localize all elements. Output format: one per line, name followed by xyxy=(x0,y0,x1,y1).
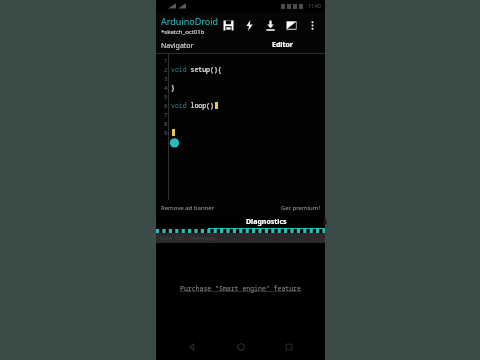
staticText: } xyxy=(171,83,175,92)
staticText: void setup(){ xyxy=(171,65,222,74)
staticText: 2 xyxy=(164,66,168,74)
button[interactable]: Purchase "Smart engine" feature xyxy=(176,280,305,297)
staticText: 6 xyxy=(164,102,168,110)
staticText: Message xyxy=(190,234,216,242)
button[interactable]: More options xyxy=(302,13,323,37)
staticText: 3 xyxy=(164,75,168,83)
staticText: 1 xyxy=(164,57,168,65)
staticText: 4 xyxy=(164,84,168,92)
button[interactable]: Get premium! xyxy=(281,204,321,212)
staticText: Col xyxy=(175,234,184,242)
staticText: 9 xyxy=(164,129,168,137)
button[interactable]: Recent apps xyxy=(276,334,302,360)
staticText: Diagnostics xyxy=(246,217,287,227)
staticText: Line xyxy=(160,234,172,242)
staticText: *sketch_oct01b xyxy=(161,28,205,36)
button[interactable]: Back xyxy=(179,334,205,360)
staticText: Get premium! xyxy=(281,204,321,212)
button[interactable]: Remove ad banner xyxy=(161,204,215,212)
button[interactable]: Navigator xyxy=(156,38,240,54)
staticText: 7 xyxy=(164,111,168,119)
staticText: 5 xyxy=(164,93,168,101)
staticText: 8 xyxy=(164,120,168,128)
button[interactable]: Verify xyxy=(239,13,260,37)
button[interactable]: Save xyxy=(218,13,239,37)
staticText: ArduinoDroid xyxy=(161,15,219,27)
button[interactable]: Upload xyxy=(260,13,281,37)
button[interactable]: Home xyxy=(228,334,254,360)
button[interactable]: Diagnostics xyxy=(208,215,325,229)
staticText: Navigator xyxy=(161,41,194,51)
button[interactable]: Run xyxy=(281,13,302,37)
staticText: Remove ad banner xyxy=(161,204,215,212)
staticText: Purchase "Smart engine" feature xyxy=(180,284,301,293)
button[interactable]: Editor xyxy=(240,38,325,54)
staticText: Editor xyxy=(272,40,293,50)
staticText: void loop() xyxy=(171,101,214,110)
staticText: 11:40 xyxy=(308,3,321,10)
